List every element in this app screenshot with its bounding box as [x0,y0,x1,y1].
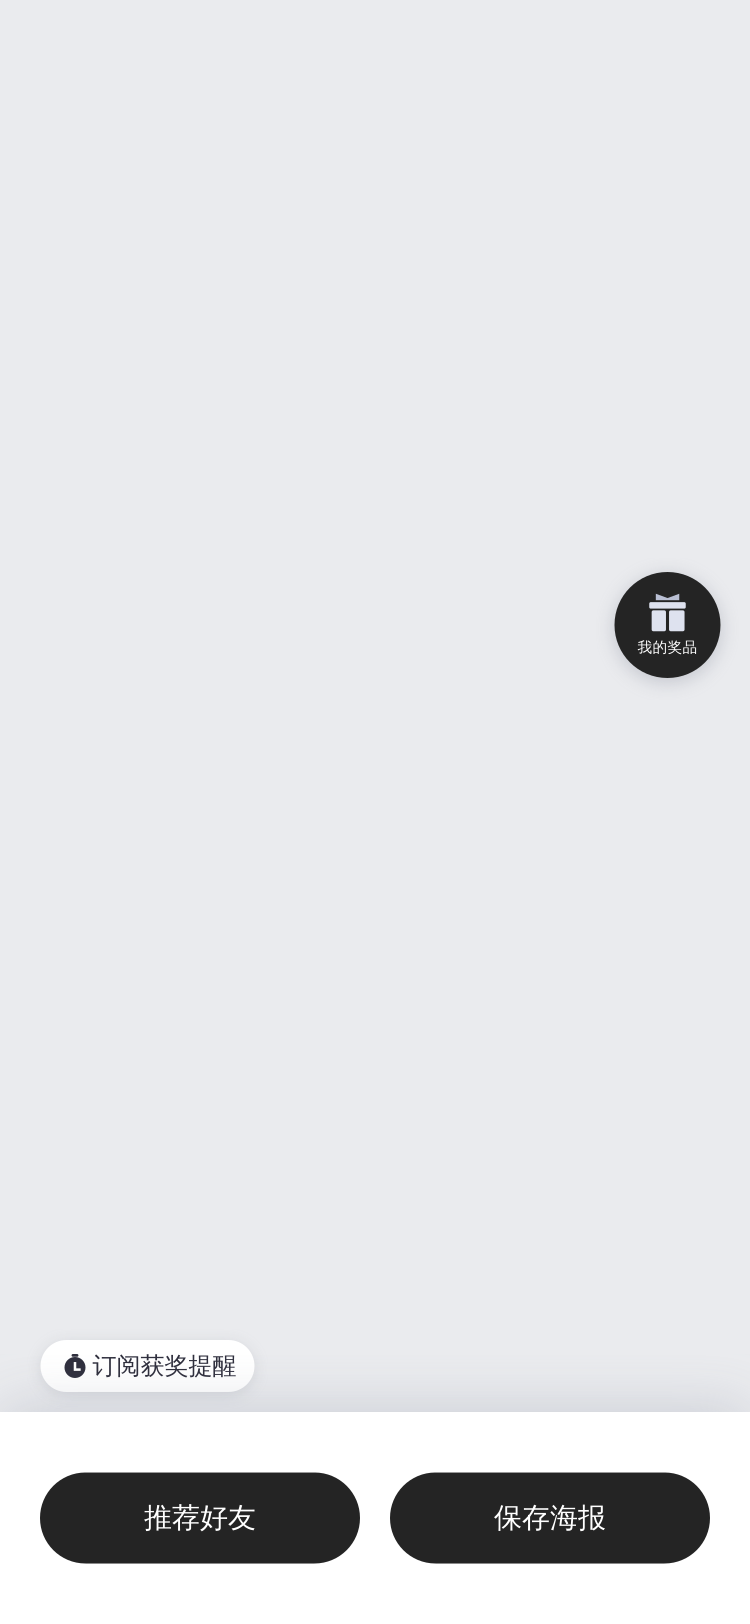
button[interactable]: 推荐好友 [40,1472,360,1563]
staticText: 保存海报 [494,1501,606,1535]
button[interactable]: 保存海报 [390,1472,710,1563]
staticText: 推荐好友 [144,1501,256,1535]
button[interactable]: 订阅获奖提醒 [40,1340,254,1392]
staticText: 订阅获奖提醒 [92,1351,236,1381]
staticText: 我的奖品 [637,638,697,656]
button[interactable]: 我的奖品 [614,572,720,678]
